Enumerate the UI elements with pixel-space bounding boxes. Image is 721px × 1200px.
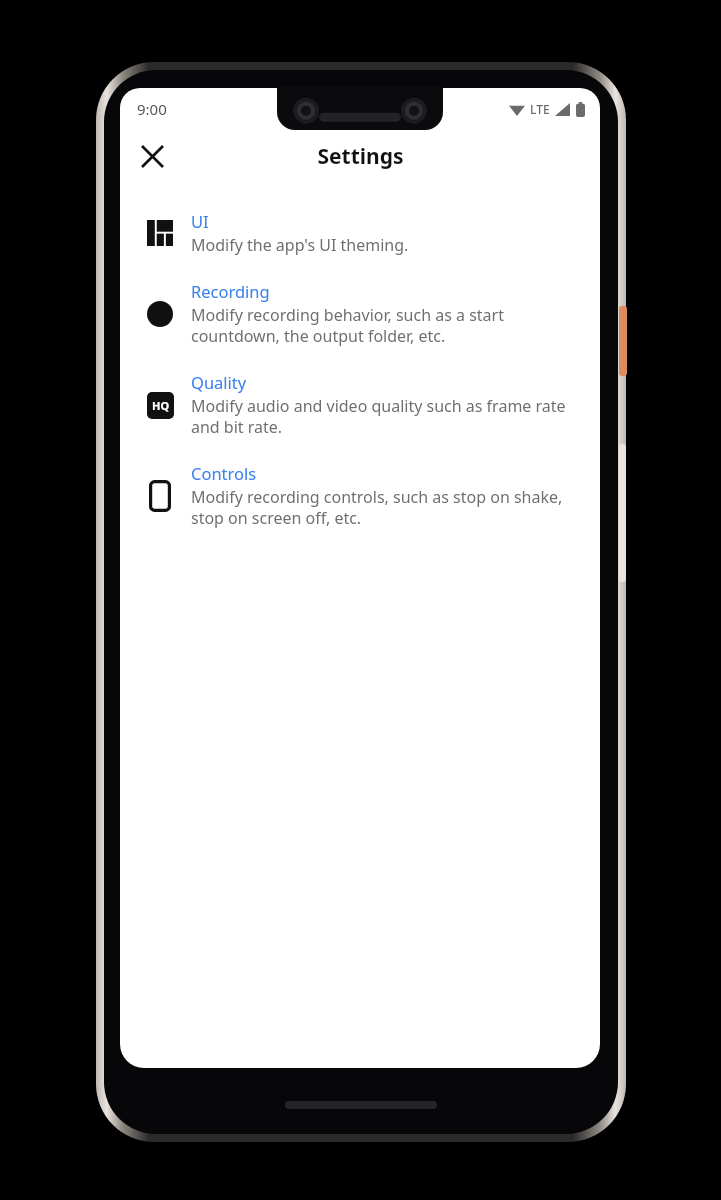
staticText: HQ [152,398,170,413]
staticText: Modify recording behavior, such as a sta… [191,304,586,347]
button[interactable]: Recording [120,280,600,347]
staticText: Recording [191,280,270,302]
staticText: Modify recording controls, such as stop … [191,486,586,529]
staticText: Controls [191,462,257,484]
button[interactable]: Controls [120,462,600,529]
staticText: Quality [191,371,247,393]
button[interactable]: HQ [120,371,600,438]
button[interactable]: Close [131,135,173,177]
staticText: Settings [317,142,404,171]
staticText: Modify the app's UI theming. [191,234,409,256]
staticText: UI [191,210,209,232]
staticText: LTE [530,101,550,117]
button[interactable]: UI [120,210,600,256]
other: Power [619,306,627,376]
staticText: 9:00 [137,99,167,119]
staticText: Modify audio and video quality such as f… [191,395,586,438]
